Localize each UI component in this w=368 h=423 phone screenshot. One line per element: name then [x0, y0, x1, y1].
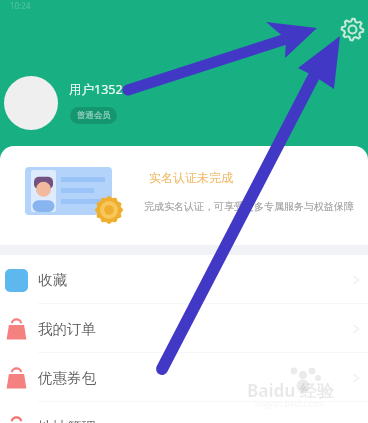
staticText: 优惠券包: [38, 369, 96, 387]
staticText: 完成实名认证，可享受更多专属服务与权益保障: [144, 200, 354, 213]
staticText: jingyan.baidu.com: [255, 398, 325, 409]
staticText: 我的订单: [38, 320, 96, 338]
staticText: 地址管理: [38, 418, 96, 423]
staticText: 收藏: [38, 271, 67, 289]
button[interactable]: 我的订单: [0, 304, 368, 353]
button[interactable]: 普通会员: [70, 107, 117, 124]
staticText: 10:24: [10, 0, 31, 11]
button[interactable]: [4, 76, 58, 130]
button[interactable]: 优惠券包: [0, 353, 368, 402]
button[interactable]: Settings: [336, 13, 368, 45]
button[interactable]: 地址管理: [0, 402, 368, 423]
button[interactable]: 收藏: [0, 255, 368, 304]
button[interactable]: 实名认证未完成: [0, 146, 368, 245]
staticText: 实名认证未完成: [149, 170, 233, 185]
staticText: Baidu 经验: [247, 379, 334, 402]
staticText: 普通会员: [77, 110, 111, 121]
staticText: 用户1352: [69, 81, 123, 98]
